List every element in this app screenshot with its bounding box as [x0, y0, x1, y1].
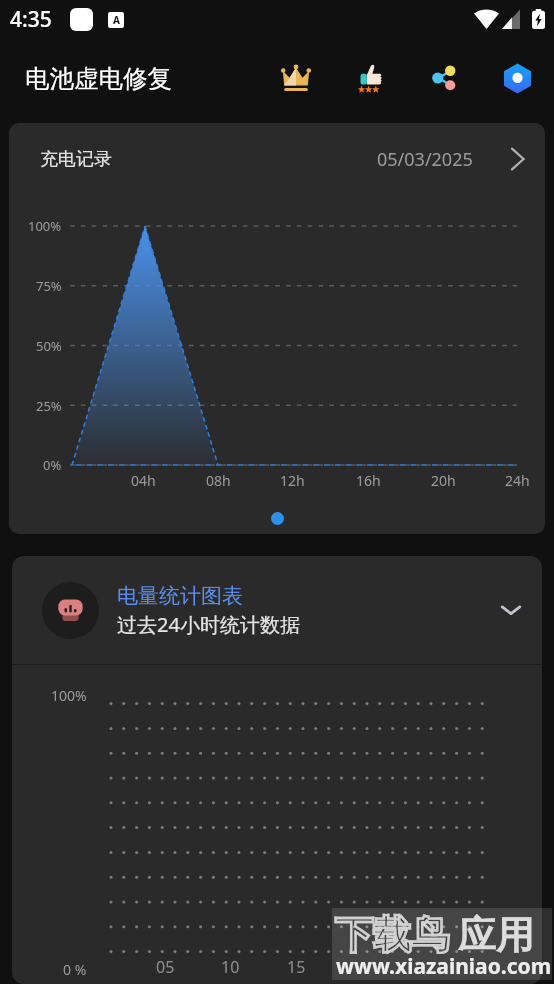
staticText: 20h — [431, 471, 456, 490]
staticText: 16h — [356, 471, 381, 490]
staticText: 100% — [28, 217, 62, 235]
staticText: 50% — [36, 337, 62, 355]
button[interactable]: Share — [420, 54, 468, 102]
button[interactable]: VIP — [272, 54, 320, 102]
button[interactable]: Rate us — [345, 54, 393, 102]
button[interactable]: 充电记录 — [9, 123, 545, 195]
staticText: 电量统计图表 — [117, 583, 243, 609]
button[interactable]: Settings — [493, 54, 541, 102]
staticText: A — [113, 13, 120, 27]
staticText: www.xiazainiao.com — [336, 952, 552, 981]
staticText: 12h — [280, 471, 305, 490]
staticText: 10 — [221, 956, 240, 978]
staticText: 充电记录 — [40, 148, 112, 171]
staticText: 15 — [287, 956, 306, 978]
staticText: 下载鸟 — [335, 911, 449, 959]
staticText: 25% — [36, 397, 62, 415]
staticText: 电池虚电修复 — [25, 63, 172, 94]
button[interactable]: 电量统计图表 — [12, 556, 542, 664]
staticText: 05/03/2025 — [377, 147, 473, 172]
staticText: 4:35 — [10, 5, 52, 34]
staticText: 75% — [36, 277, 62, 295]
staticText: 24h — [505, 471, 530, 490]
staticText: 0% — [43, 456, 62, 474]
staticText: 08h — [206, 471, 231, 490]
staticText: 应用 — [458, 911, 534, 959]
staticText: 过去24小时统计数据 — [117, 611, 300, 638]
staticText: 05 — [156, 956, 175, 978]
staticText: 0 % — [63, 960, 87, 979]
staticText: 04h — [131, 471, 156, 490]
staticText: 100% — [51, 686, 87, 705]
